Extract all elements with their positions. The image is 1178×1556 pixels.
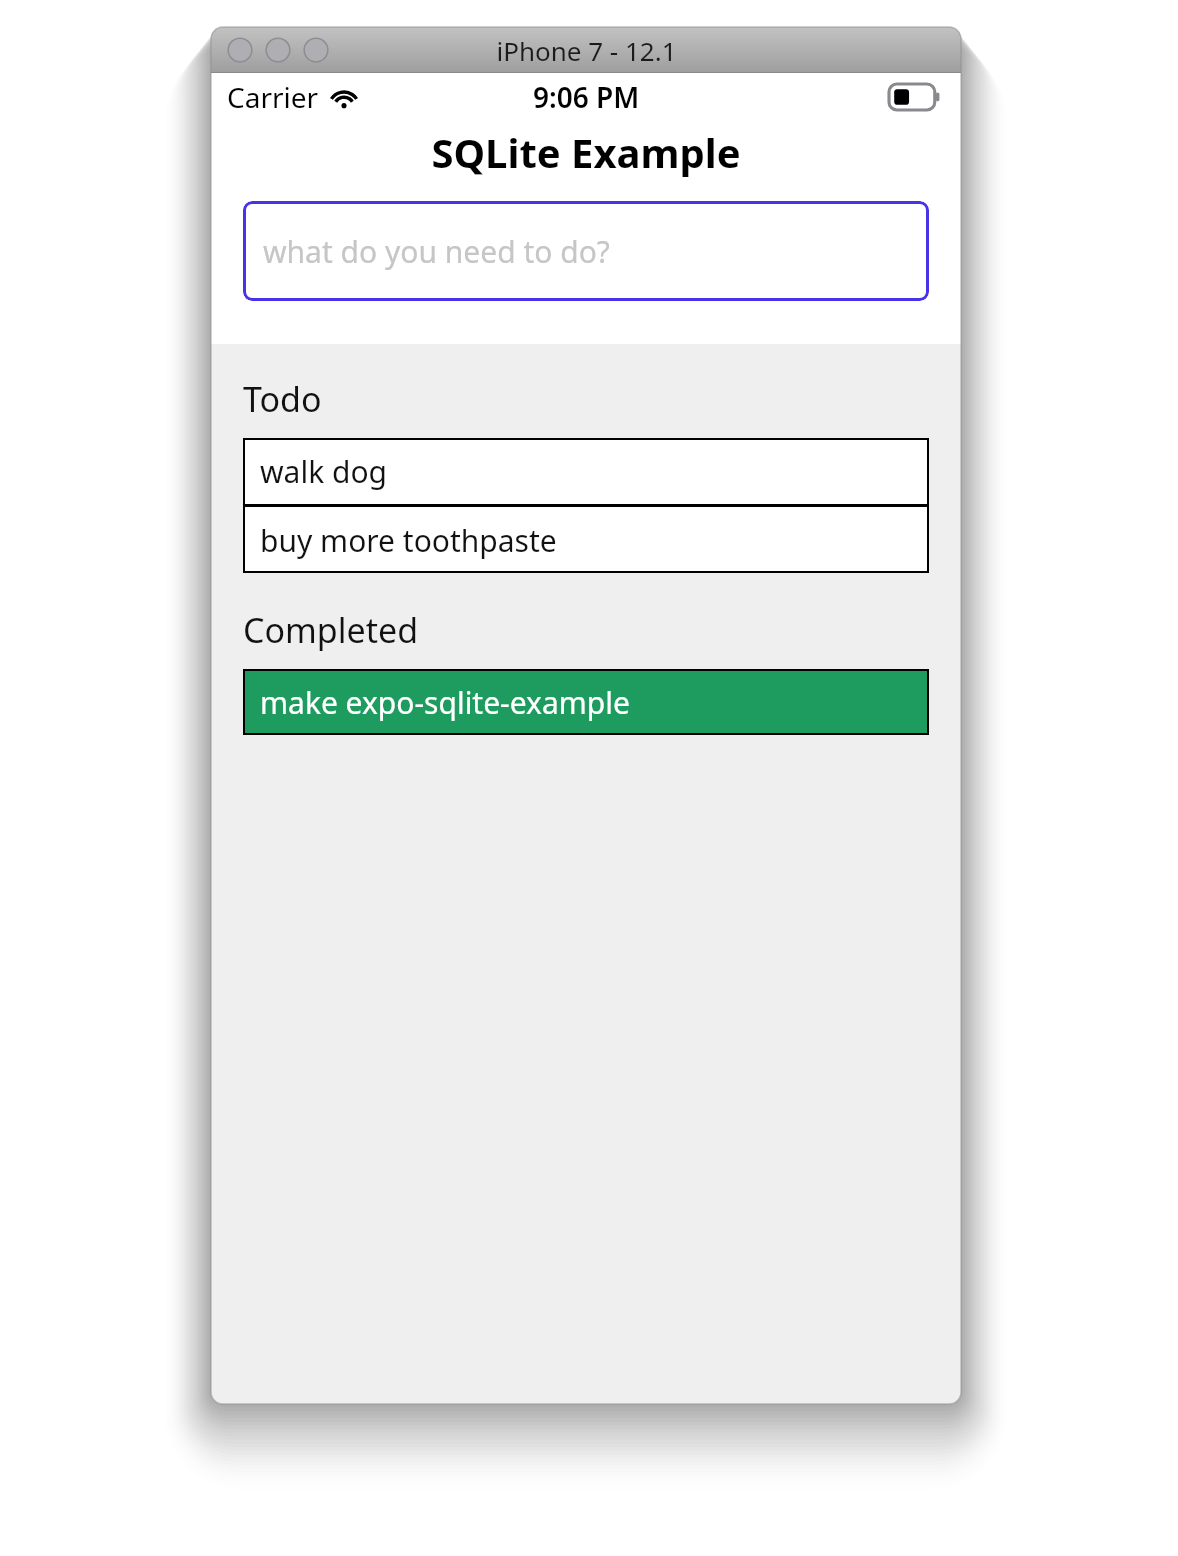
staticText: what do you need to do? [263, 231, 610, 272]
button[interactable]: Window button [265, 37, 291, 63]
button[interactable]: walk dog [243, 438, 929, 504]
staticText: Todo [243, 376, 322, 422]
staticText: buy more toothpaste [260, 520, 557, 561]
staticText: make expo-sqlite-example [260, 682, 630, 723]
button[interactable]: make expo-sqlite-example [243, 669, 929, 735]
staticText: SQLite Example [211, 125, 961, 179]
other: Battery [889, 84, 941, 110]
staticText: walk dog [260, 451, 388, 492]
staticText: 9:06 PM [533, 78, 640, 116]
staticText: Completed [243, 607, 419, 653]
staticText: Carrier [227, 78, 319, 116]
staticText: iPhone 7 - 12.1 [496, 33, 677, 68]
button[interactable]: Window button [303, 37, 329, 63]
button[interactable]: what do you need to do? [243, 201, 929, 301]
button[interactable]: buy more toothpaste [243, 507, 929, 573]
button[interactable]: Window button [227, 37, 253, 63]
